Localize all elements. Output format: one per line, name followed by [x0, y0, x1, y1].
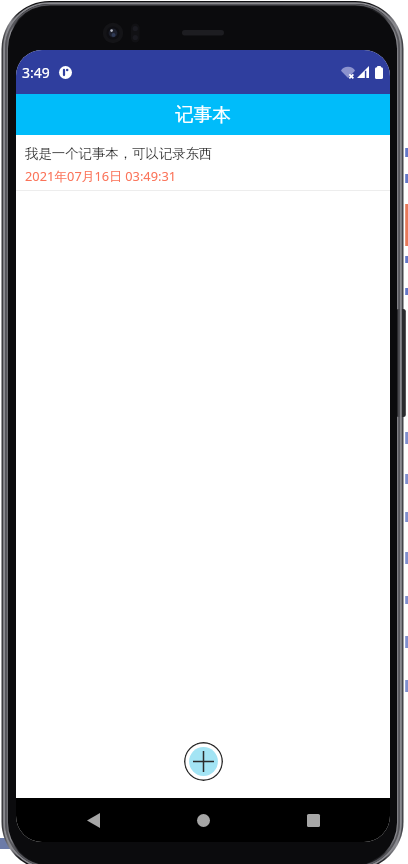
staticText: 记事本: [175, 103, 231, 126]
button[interactable]: Back: [71, 798, 115, 842]
staticText: 2021年07月16日 03:49:31: [25, 167, 177, 184]
button[interactable]: Recents: [291, 798, 335, 842]
staticText: 我是一个记事本，可以记录东西: [25, 145, 213, 162]
button[interactable]: 我是一个记事本，可以记录东西: [16, 135, 390, 190]
staticText: 3:49: [22, 63, 50, 82]
button[interactable]: Add note: [184, 742, 223, 781]
button[interactable]: Home: [181, 798, 225, 842]
